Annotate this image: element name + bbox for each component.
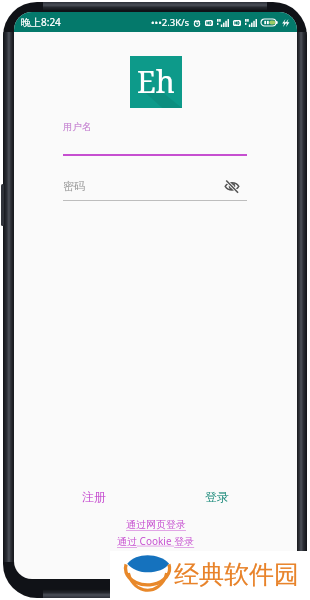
staticText: •••2.3K/s bbox=[151, 16, 190, 29]
staticText: Eh bbox=[137, 61, 175, 102]
staticText: 晚上8:24 bbox=[21, 15, 61, 29]
button[interactable]: 通过 Cookie 登录 bbox=[117, 534, 195, 548]
staticText: 登录 bbox=[205, 489, 229, 504]
staticText: 通过网页登录 bbox=[126, 518, 186, 531]
staticText: 密码 bbox=[63, 179, 85, 193]
button[interactable]: 注册 bbox=[33, 483, 155, 510]
staticText: 用户名 bbox=[63, 121, 92, 133]
button[interactable]: 登录 bbox=[155, 483, 278, 510]
staticText: 通过 Cookie 登录 bbox=[117, 534, 195, 548]
button[interactable]: Show password bbox=[221, 175, 243, 197]
staticText: 注册 bbox=[82, 489, 106, 504]
button[interactable]: 通过网页登录 bbox=[126, 518, 186, 531]
staticText: 经典软件园 bbox=[174, 559, 299, 588]
